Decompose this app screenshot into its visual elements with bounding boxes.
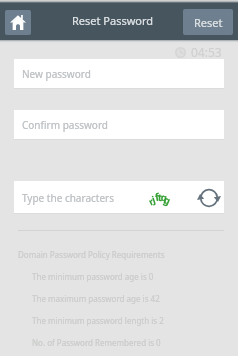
staticText: Confirm password [22, 118, 108, 132]
staticText: q [160, 190, 169, 205]
button[interactable]: Confirm password [14, 110, 224, 140]
button[interactable]: Refresh captcha [198, 187, 220, 209]
staticText: j [150, 193, 157, 206]
staticText: g [162, 192, 173, 208]
staticText: The minimum password age is 0 [32, 271, 154, 282]
staticText: The maximum password age is 42 [32, 293, 160, 304]
staticText: Reset Password [72, 13, 154, 28]
button[interactable]: New password [14, 59, 224, 89]
staticText: Domain Password Policy Requirements [18, 249, 165, 260]
staticText: 04:53 [191, 44, 222, 60]
button[interactable]: Type the characters [14, 181, 224, 214]
staticText: The minimum password length is 2 [32, 315, 164, 326]
staticText: No. of Password Remembered is 0 [32, 337, 161, 348]
button[interactable]: Reset [183, 9, 233, 35]
staticText: f [154, 190, 161, 204]
staticText: New password [22, 67, 91, 81]
staticText: Type the characters [22, 191, 114, 205]
staticText: t [158, 190, 163, 204]
staticText: r [146, 195, 157, 208]
staticText: Reset [194, 15, 223, 30]
button[interactable]: Home [5, 10, 31, 35]
